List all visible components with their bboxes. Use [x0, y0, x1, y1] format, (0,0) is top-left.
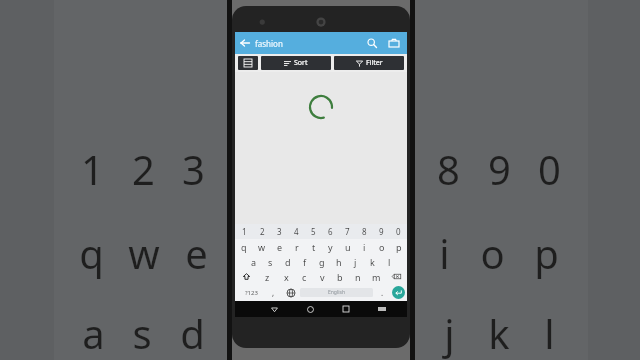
button[interactable]: m — [367, 269, 385, 284]
staticText: v — [320, 271, 325, 283]
button[interactable]: r — [288, 239, 305, 254]
button[interactable]: t — [305, 239, 322, 254]
staticText: q — [79, 226, 104, 280]
staticText: r — [295, 241, 299, 253]
button[interactable]: Filter — [334, 56, 404, 70]
button[interactable]: w — [253, 239, 271, 254]
staticText: c — [302, 271, 307, 283]
button[interactable]: y — [322, 239, 339, 254]
button[interactable]: ?123 — [237, 284, 266, 301]
staticText: 0 — [538, 142, 561, 196]
staticText: m — [372, 271, 381, 283]
button[interactable]: z — [258, 269, 277, 284]
staticText: ?123 — [245, 289, 258, 297]
staticText: 6 — [328, 226, 333, 237]
button[interactable]: d — [279, 254, 296, 269]
button[interactable]: i — [356, 239, 373, 254]
staticText: n — [355, 271, 361, 283]
staticText: k — [370, 256, 375, 268]
button[interactable]: h — [330, 254, 347, 269]
button[interactable]: , — [266, 284, 281, 301]
button[interactable]: Recent apps — [328, 301, 364, 317]
button[interactable]: x — [277, 269, 295, 284]
staticText: 2 — [132, 142, 155, 196]
button[interactable]: 0 — [390, 224, 407, 239]
button[interactable]: Keyboard — [364, 301, 400, 317]
button[interactable]: Sort — [261, 56, 331, 70]
staticText: 9 — [488, 142, 511, 196]
button[interactable]: Enter — [392, 286, 405, 299]
staticText: a — [82, 306, 105, 360]
button[interactable]: k — [364, 254, 381, 269]
button[interactable]: 3 — [271, 224, 288, 239]
button[interactable]: b — [331, 269, 349, 284]
button[interactable]: Back — [256, 301, 292, 317]
button[interactable]: s — [262, 254, 279, 269]
button[interactable]: 9 — [373, 224, 390, 239]
button[interactable]: Bag — [383, 32, 405, 54]
button[interactable]: q — [235, 239, 253, 254]
staticText: o — [480, 226, 505, 280]
button[interactable]: 4 — [288, 224, 305, 239]
button[interactable]: f — [296, 254, 313, 269]
button[interactable]: Back — [235, 33, 255, 53]
staticText: 3 — [277, 226, 282, 237]
staticText: j — [444, 306, 455, 360]
staticText: u — [345, 241, 351, 253]
staticText: e — [277, 241, 283, 253]
staticText: i — [363, 241, 366, 253]
button[interactable]: j — [347, 254, 364, 269]
staticText: z — [265, 271, 270, 283]
staticText: q — [241, 241, 247, 253]
button[interactable]: 1 — [235, 224, 253, 239]
button[interactable]: Home — [292, 301, 328, 317]
button[interactable]: n — [349, 269, 367, 284]
staticText: 8 — [437, 142, 460, 196]
button[interactable]: 6 — [322, 224, 339, 239]
staticText: g — [319, 256, 325, 268]
button[interactable]: Shift — [235, 269, 258, 284]
button[interactable]: Backspace — [385, 269, 407, 284]
button[interactable]: List view — [238, 56, 258, 70]
staticText: y — [328, 241, 333, 253]
button[interactable]: v — [313, 269, 331, 284]
staticText: e — [185, 226, 208, 280]
button[interactable]: o — [373, 239, 390, 254]
staticText: k — [488, 306, 510, 360]
button[interactable]: English — [300, 288, 373, 297]
button[interactable]: . — [373, 284, 392, 301]
staticText: h — [336, 256, 342, 268]
staticText: a — [251, 256, 257, 268]
button[interactable]: c — [295, 269, 313, 284]
staticText: w — [258, 241, 266, 253]
button[interactable]: g — [313, 254, 330, 269]
button[interactable]: l — [381, 254, 398, 269]
staticText: fashion — [255, 38, 361, 49]
staticText: s — [132, 306, 152, 360]
button[interactable]: Change language — [281, 284, 300, 301]
button[interactable]: e — [271, 239, 288, 254]
staticText: . — [381, 287, 384, 298]
staticText: b — [337, 271, 343, 283]
staticText: w — [128, 226, 160, 280]
button[interactable]: Search — [361, 32, 383, 54]
staticText: 8 — [362, 226, 367, 237]
staticText: 3 — [182, 142, 205, 196]
staticText: f — [303, 256, 307, 268]
staticText: p — [396, 241, 402, 253]
staticText: Filter — [366, 58, 383, 68]
staticText: 7 — [345, 226, 350, 237]
staticText: l — [544, 306, 555, 360]
button[interactable]: 8 — [356, 224, 373, 239]
button[interactable]: 7 — [339, 224, 356, 239]
staticText: 5 — [311, 226, 316, 237]
staticText: j — [354, 256, 357, 268]
staticText: 9 — [379, 226, 384, 237]
button[interactable]: a — [245, 254, 262, 269]
button[interactable]: u — [339, 239, 356, 254]
staticText: t — [312, 241, 316, 253]
staticText: d — [285, 256, 291, 268]
button[interactable]: 5 — [305, 224, 322, 239]
button[interactable]: p — [390, 239, 407, 254]
button[interactable]: 2 — [253, 224, 271, 239]
